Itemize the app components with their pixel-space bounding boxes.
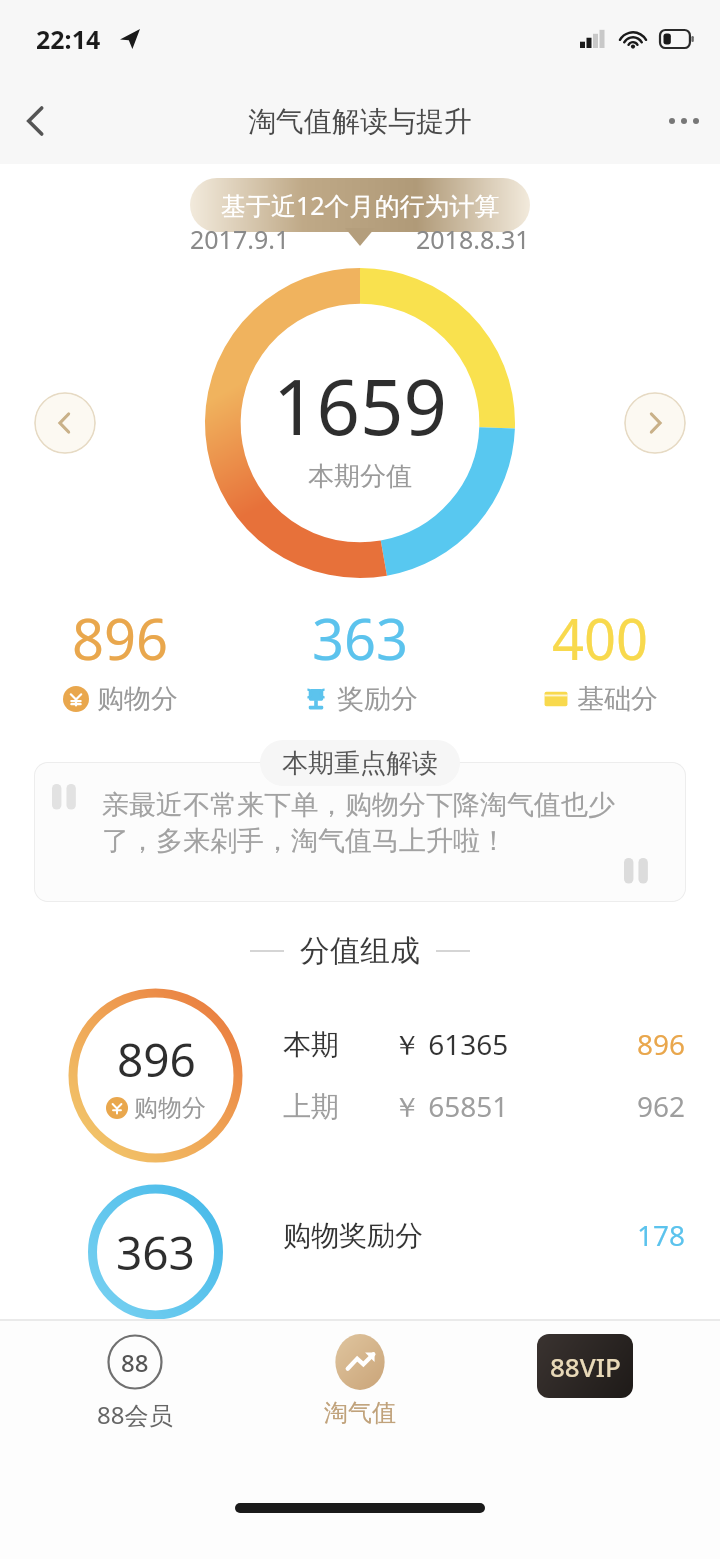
staticText: 本期分值 bbox=[308, 460, 412, 493]
button[interactable]: 400 bbox=[510, 600, 690, 716]
staticText: 88 bbox=[121, 1346, 149, 1379]
staticText: 2018.8.31 bbox=[416, 222, 530, 256]
staticText: 分值组成 bbox=[300, 932, 420, 970]
staticText: 购物分 bbox=[97, 682, 178, 716]
staticText: 上期 bbox=[283, 1089, 393, 1124]
button[interactable]: 896 bbox=[30, 600, 210, 716]
button[interactable]: 88VIP bbox=[495, 1334, 675, 1398]
staticText: ￥ 65851 bbox=[393, 1087, 637, 1125]
staticText: 淘气值 bbox=[324, 1398, 396, 1428]
staticText: 896 bbox=[117, 1028, 196, 1091]
staticText: 88会员 bbox=[97, 1398, 173, 1431]
staticText: 896 bbox=[72, 600, 169, 676]
staticText: 896 bbox=[637, 1025, 686, 1063]
staticText: 1659 bbox=[273, 354, 447, 458]
staticText: 400 bbox=[552, 600, 649, 676]
staticText: 962 bbox=[637, 1087, 686, 1125]
button[interactable]: Previous period bbox=[34, 392, 96, 454]
staticText: 本期重点解读 bbox=[282, 747, 438, 780]
staticText: 基础分 bbox=[577, 682, 658, 716]
staticText: ￥ 61365 bbox=[393, 1025, 637, 1063]
staticText: 淘气值解读与提升 bbox=[248, 104, 472, 139]
staticText: 178 bbox=[637, 1216, 686, 1254]
button[interactable]: 896 bbox=[0, 980, 720, 1170]
staticText: 363 bbox=[312, 600, 409, 676]
staticText: 本期 bbox=[283, 1027, 393, 1062]
button[interactable]: Back bbox=[0, 85, 72, 157]
staticText: 基于近12个月的行为计算 bbox=[221, 188, 500, 222]
staticText: 363 bbox=[116, 1221, 195, 1284]
staticText: 22:14 bbox=[36, 22, 101, 56]
button[interactable]: 亲最近不常来下单，购物分下降淘气值也少了，多来剁手，淘气值马上升啦！ bbox=[34, 762, 686, 902]
staticText: 亲最近不常来下单，购物分下降淘气值也少了，多来剁手，淘气值马上升啦！ bbox=[102, 788, 660, 858]
staticText: 2017.9.1 bbox=[190, 222, 290, 256]
staticText: 奖励分 bbox=[337, 682, 418, 716]
staticText: 购物奖励分 bbox=[283, 1218, 637, 1253]
staticText: 88VIP bbox=[550, 1349, 621, 1384]
button[interactable]: Next period bbox=[624, 392, 686, 454]
button[interactable]: 363 bbox=[270, 600, 450, 716]
button[interactable]: More options bbox=[648, 85, 720, 157]
button[interactable]: 363 bbox=[0, 1170, 720, 1320]
button[interactable]: 淘气值 bbox=[270, 1334, 450, 1428]
button[interactable]: 88 bbox=[45, 1334, 225, 1431]
staticText: 购物分 bbox=[134, 1093, 206, 1123]
